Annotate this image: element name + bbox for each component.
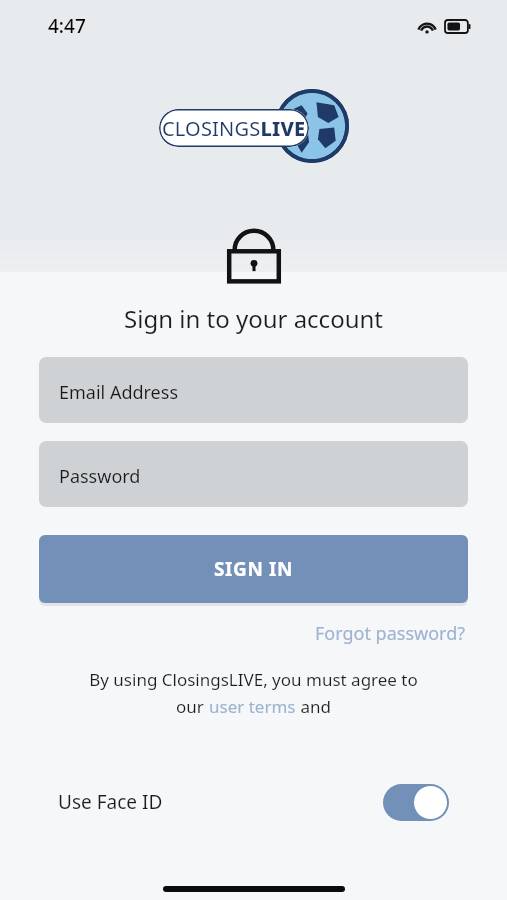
button[interactable]: Forgot password? [313,617,468,650]
staticText: Forgot password? [315,621,466,646]
staticText: SIGN IN [214,556,294,582]
button[interactable]: Use Face ID [58,778,449,826]
button[interactable]: user terms [209,695,296,718]
staticText: 4:47 [48,13,86,39]
other: Use Face ID toggle, on [383,784,449,821]
staticText: and [296,695,331,718]
staticText: Email Address [59,380,179,405]
other: Secure sign in [223,218,285,282]
button[interactable]: Password [39,441,468,507]
staticText: CLOSINGSLIVE [162,115,306,142]
staticText: Password [59,464,141,489]
button[interactable]: Email Address [39,357,468,423]
staticText: Sign in to your account [0,302,507,335]
staticText: user terms [209,695,296,718]
other: ClosingsLIVE logo [159,88,349,166]
staticText: By using ClosingsLIVE, you must agree to [89,668,418,691]
staticText: our [176,695,209,718]
button[interactable]: SIGN IN [39,535,468,603]
staticText: Use Face ID [58,789,163,815]
